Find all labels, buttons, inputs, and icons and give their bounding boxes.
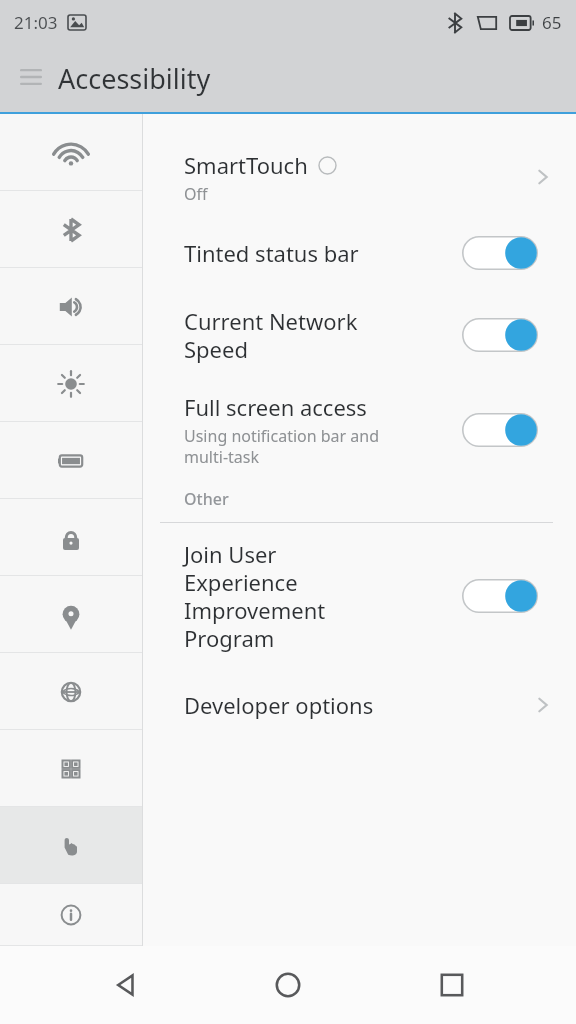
button[interactable]: Navigation menu [10, 57, 52, 99]
button[interactable]: Tinted status bar [143, 216, 576, 290]
button[interactable]: Full screen access [143, 380, 576, 480]
staticText: SmartTouch [184, 150, 308, 180]
button[interactable]: Toggle on [462, 579, 538, 613]
button[interactable]: Accessibility [0, 807, 142, 884]
button[interactable]: Home [249, 946, 327, 1024]
staticText: 21:03 [14, 11, 58, 34]
button[interactable]: Wi-Fi [0, 114, 142, 191]
staticText: Full screen access [184, 392, 367, 422]
staticText: Current Network Speed [184, 306, 358, 364]
button[interactable]: Bluetooth [0, 191, 142, 268]
button[interactable]: Toggle on [462, 318, 538, 352]
button[interactable]: Location [0, 576, 142, 653]
button[interactable]: Recents [413, 946, 491, 1024]
staticText: Developer options [184, 690, 530, 720]
button[interactable]: Security [0, 499, 142, 576]
staticText: Accessibility [58, 60, 211, 97]
button[interactable]: Toggle on [462, 413, 538, 447]
button[interactable]: Apps [0, 730, 142, 807]
button[interactable]: Language [0, 653, 142, 730]
button[interactable]: Sound [0, 268, 142, 345]
button[interactable]: Battery [0, 422, 142, 499]
button[interactable]: Back [86, 946, 164, 1024]
button[interactable]: Current Network Speed [143, 290, 576, 380]
button[interactable]: Developer options [143, 669, 576, 741]
staticText: Off [184, 183, 208, 205]
staticText: 65 [542, 11, 562, 34]
staticText: Using notification bar and multi-task [184, 425, 380, 468]
staticText: Join User Experience Improvement Program [184, 539, 326, 653]
button[interactable]: Toggle on [462, 236, 538, 270]
staticText: Tinted status bar [184, 238, 359, 268]
button[interactable]: Join User Experience Improvement Program [143, 523, 576, 669]
button[interactable]: Display [0, 345, 142, 422]
button[interactable]: About [0, 884, 142, 946]
staticText: Other [184, 488, 229, 510]
button[interactable]: SmartTouch [143, 138, 576, 216]
